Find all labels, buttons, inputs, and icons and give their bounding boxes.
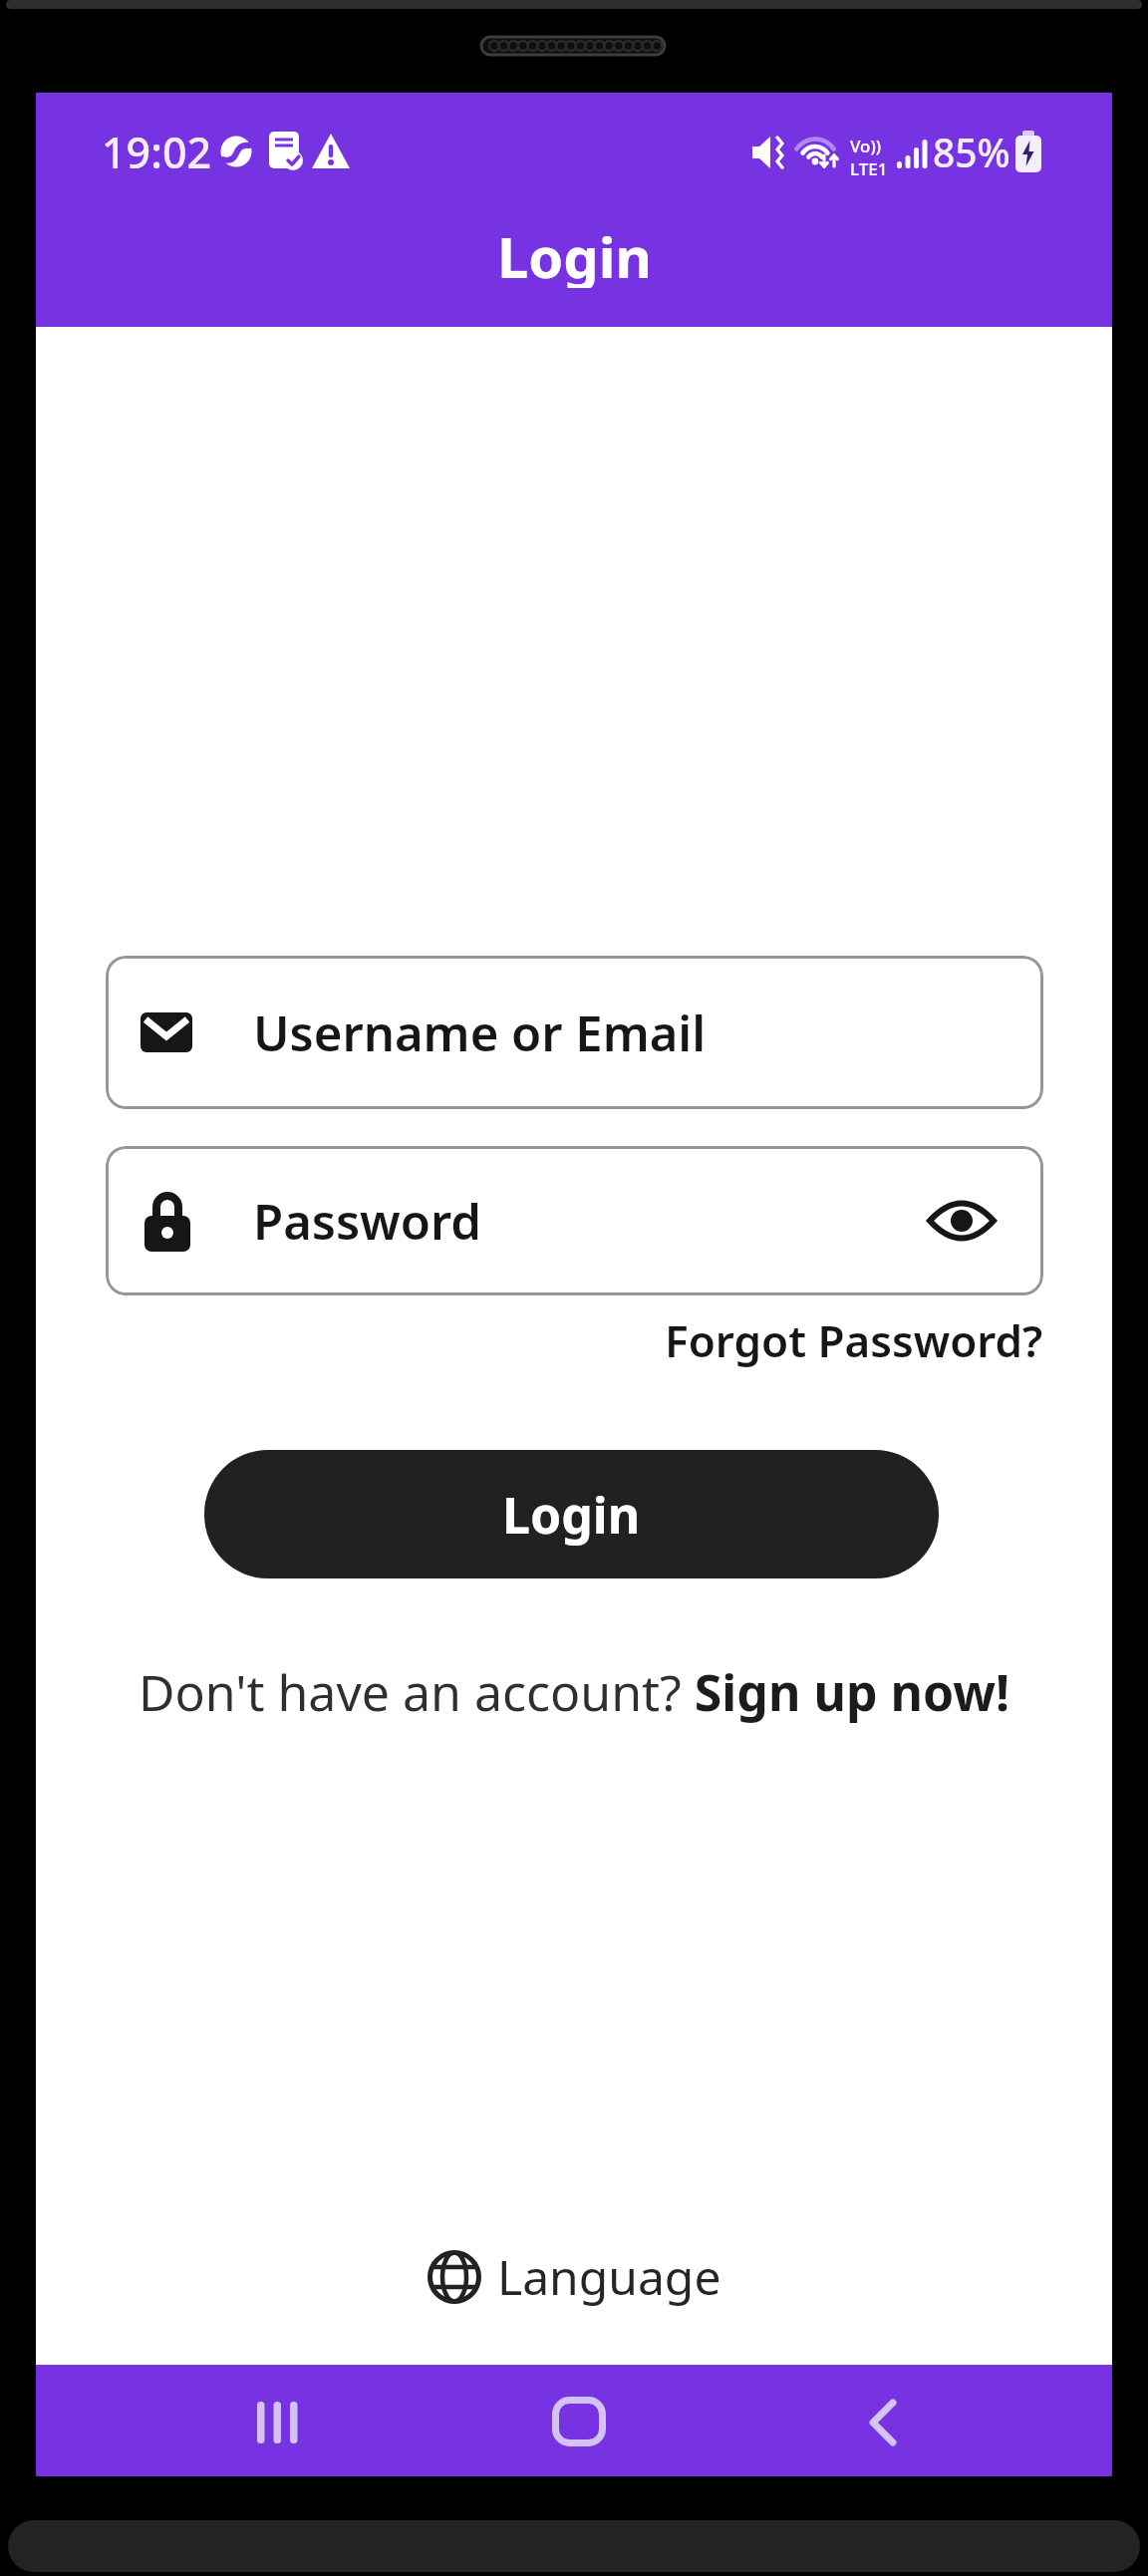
button[interactable]: Username or Email: [106, 956, 1043, 1109]
button[interactable]: [220, 2385, 335, 2459]
button[interactable]: Password: [106, 1146, 1043, 1295]
staticText: 85%: [933, 126, 1010, 178]
button[interactable]: [833, 2385, 933, 2459]
staticText: Username or Email: [253, 1000, 707, 1066]
staticText: Vo)): [850, 135, 882, 157]
staticText: Login: [497, 218, 652, 288]
button[interactable]: Forgot Password?: [665, 1310, 1043, 1370]
button[interactable]: [524, 2383, 634, 2460]
staticText: Language: [497, 2244, 721, 2309]
button[interactable]: [928, 1198, 996, 1244]
staticText: Login: [502, 1481, 641, 1549]
staticText: Password: [253, 1188, 481, 1255]
button[interactable]: Login: [204, 1450, 939, 1578]
button[interactable]: Language: [428, 2244, 721, 2309]
staticText: Don't have an account? Sign up now!: [139, 1658, 1010, 1726]
button[interactable]: Don't have an account? Sign up now!: [36, 1657, 1112, 1727]
staticText: 19:02: [102, 123, 212, 181]
staticText: LTE1: [850, 157, 888, 180]
